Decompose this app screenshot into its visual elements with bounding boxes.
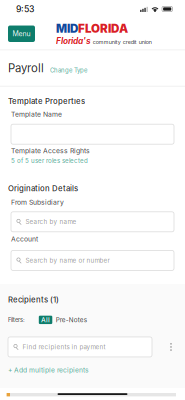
- staticText: FLORIDA: [78, 21, 128, 35]
- button[interactable]: Change Type: [50, 67, 87, 75]
- staticText: Template Name: [11, 110, 62, 118]
- button[interactable]: Menu: [8, 25, 35, 42]
- staticText: Search by name or number: [25, 257, 109, 264]
- staticText: Payroll: [8, 61, 44, 75]
- staticText: Pre-Notes: [56, 316, 87, 324]
- staticText: Search by name: [25, 218, 76, 226]
- staticText: Recipients (1): [8, 295, 59, 304]
- staticText: Change Type: [50, 67, 87, 74]
- staticText: MID: [56, 21, 78, 35]
- button[interactable]: All: [39, 316, 52, 324]
- staticText: community credit union: [93, 39, 152, 45]
- staticText: Account: [11, 235, 38, 243]
- staticText: Florida's: [56, 36, 91, 46]
- staticText: Origination Details: [8, 184, 78, 193]
- staticText: + Add multiple recipients: [8, 366, 89, 374]
- staticText: 5 of 5 user roles selected: [11, 157, 88, 164]
- staticText: Find recipients in payment: [22, 343, 105, 351]
- staticText: All: [41, 316, 50, 324]
- button[interactable]: 5 of 5 user roles selected: [0, 155, 88, 164]
- staticText: Template Properties: [8, 97, 85, 106]
- staticText: Template Access Rights: [11, 147, 90, 155]
- staticText: Menu: [12, 30, 30, 38]
- button[interactable]: + Add multiple recipients: [8, 357, 89, 374]
- staticText: From Subsidiary: [11, 198, 64, 206]
- staticText: 9:53: [16, 4, 34, 14]
- staticText: Filters:: [8, 316, 25, 323]
- button[interactable]: More options: [165, 337, 177, 357]
- button[interactable]: Pre-Notes: [56, 316, 87, 324]
